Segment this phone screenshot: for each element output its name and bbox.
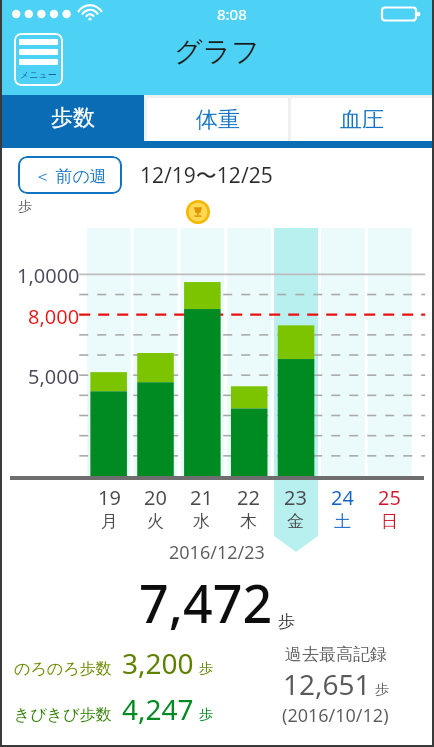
button[interactable]: 血圧 [291, 98, 432, 141]
staticText: 25 [378, 484, 401, 511]
staticText: 血圧 [340, 106, 384, 134]
button[interactable]: 25 [366, 484, 413, 532]
staticText: 4,247 [122, 690, 194, 728]
button[interactable]: 歩数 [2, 95, 144, 141]
button[interactable]: ＜ 前の週 [18, 156, 122, 194]
staticText: ＜ 前の週 [34, 164, 107, 187]
staticText: 金 [287, 511, 304, 532]
staticText: 5,000 [28, 363, 80, 390]
staticText: 月 [101, 511, 118, 532]
staticText: のろのろ歩数 [14, 659, 112, 679]
button[interactable]: メニュー [14, 33, 63, 86]
staticText: 2016/12/23 [169, 540, 265, 565]
staticText: 8,000 [28, 303, 80, 330]
staticText: 24 [331, 484, 354, 511]
staticText: メニュー [20, 69, 57, 80]
staticText: 12,651 [283, 665, 371, 703]
staticText: 21 [190, 484, 213, 511]
staticText: 過去最高記録 [285, 644, 387, 665]
staticText: 歩 [278, 611, 295, 632]
button[interactable]: 23 [272, 484, 319, 532]
staticText: グラフ [174, 34, 260, 69]
staticText: 歩数 [51, 104, 95, 132]
staticText: 木 [240, 511, 257, 532]
staticText: (2016/10/12) [282, 703, 389, 728]
staticText: 3,200 [122, 644, 194, 682]
staticText: 日 [381, 511, 398, 532]
staticText: 19 [98, 484, 121, 511]
staticText: 23 [284, 484, 307, 511]
staticText: 22 [237, 484, 260, 511]
staticText: 20 [144, 484, 167, 511]
button[interactable]: 20 [132, 484, 178, 532]
staticText: 歩 [375, 681, 389, 699]
staticText: きびきび歩数 [14, 705, 112, 725]
staticText: 12/19〜12/25 [140, 161, 273, 190]
button[interactable]: 22 [225, 484, 272, 532]
staticText: 1,0000 [17, 262, 80, 289]
staticText: 歩 [199, 660, 213, 678]
staticText: 火 [147, 511, 164, 532]
staticText: 水 [193, 511, 210, 532]
staticText: 歩 [18, 198, 32, 216]
button[interactable]: 体重 [147, 98, 288, 141]
button[interactable]: 24 [319, 484, 366, 532]
staticText: 歩 [199, 706, 213, 724]
staticText: 土 [334, 511, 351, 532]
button[interactable]: 19 [86, 484, 132, 532]
staticText: 7,472 [139, 567, 273, 638]
staticText: 体重 [196, 106, 240, 134]
staticText: 8:08 [217, 4, 247, 24]
button[interactable]: 21 [178, 484, 225, 532]
